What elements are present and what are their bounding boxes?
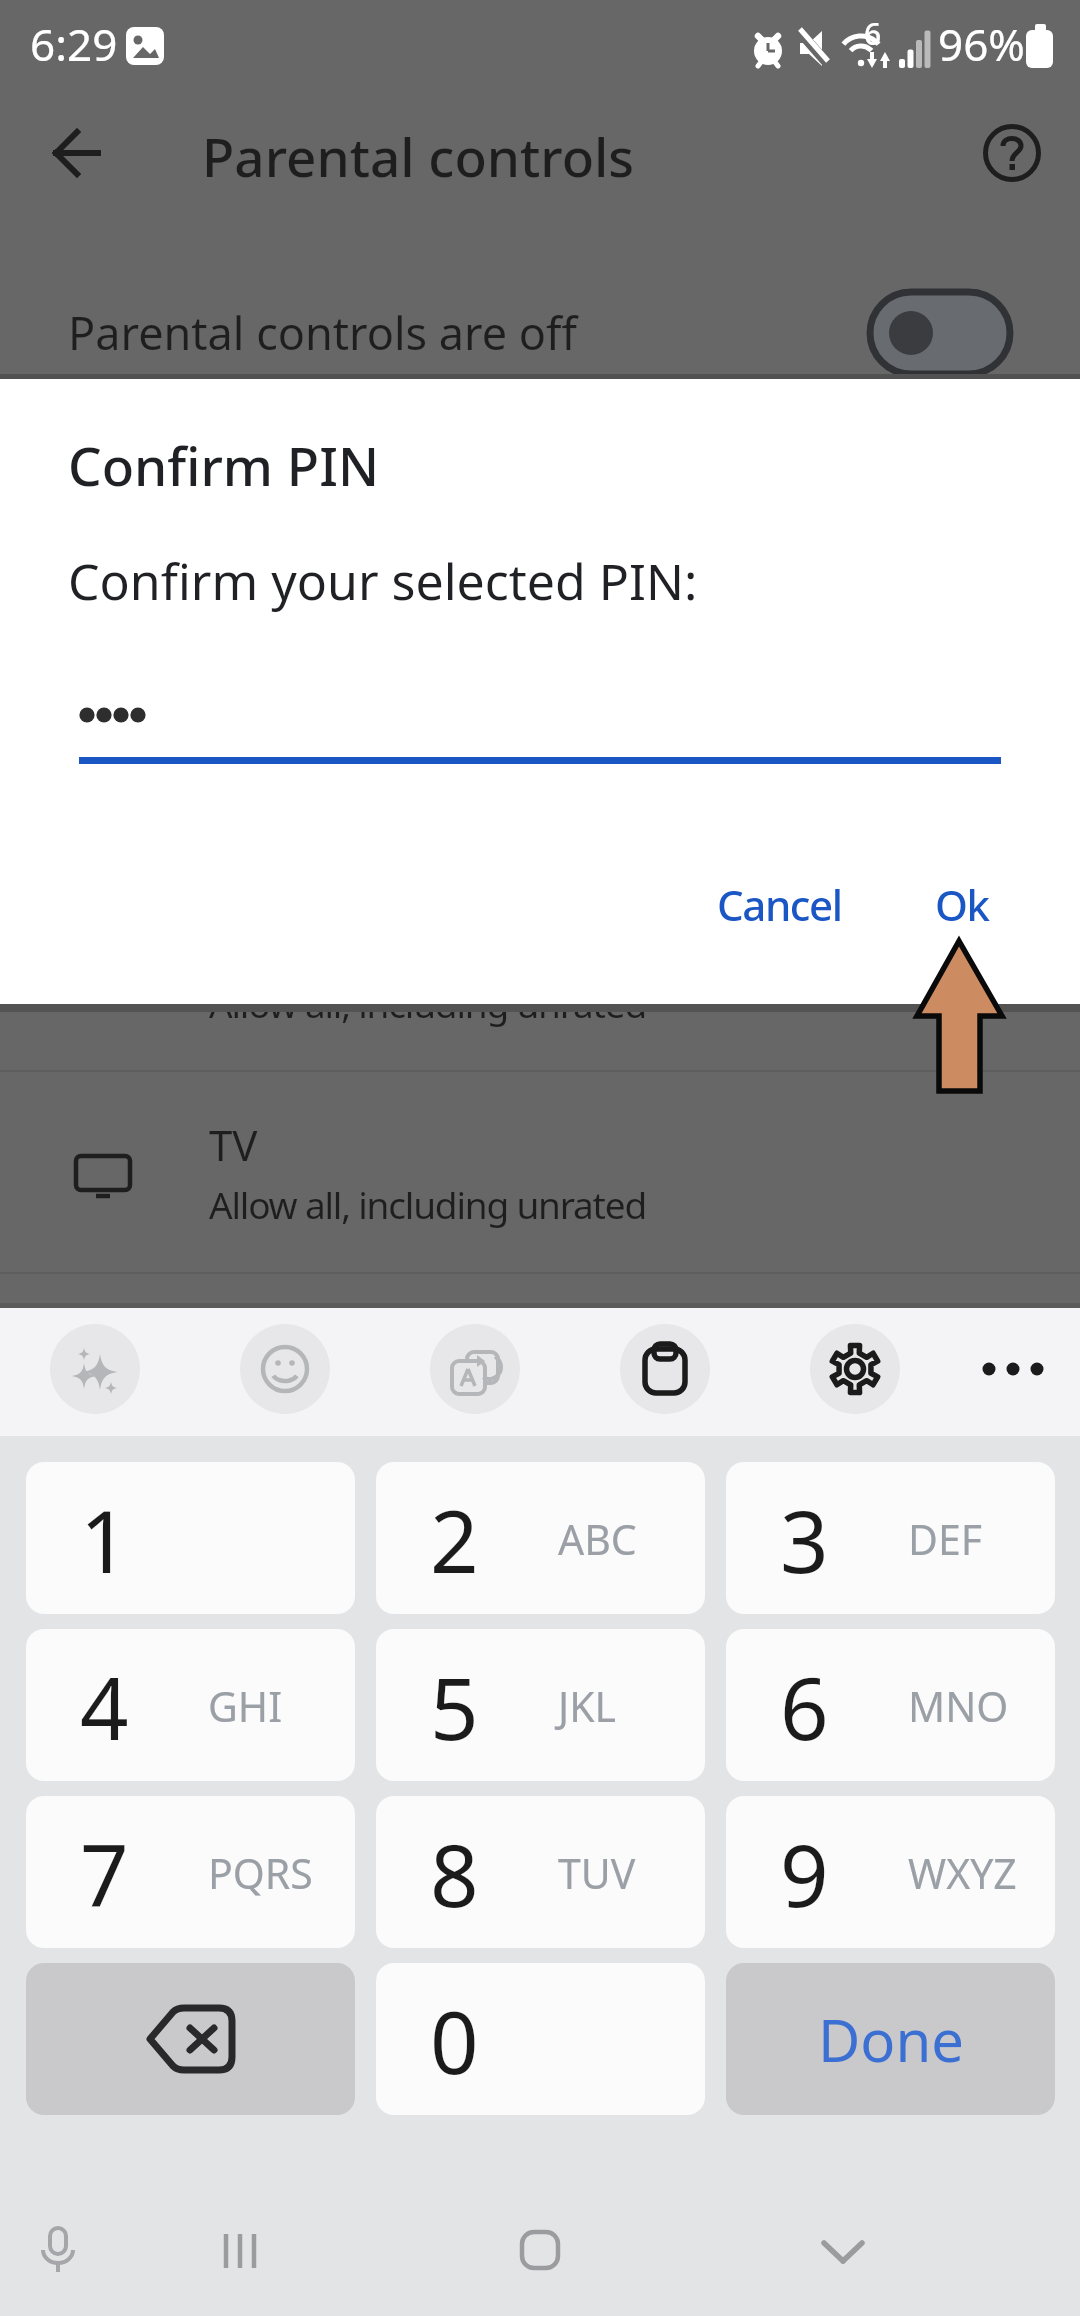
button[interactable]: 3: [726, 1462, 1055, 1614]
button[interactable]: Voice input: [18, 2210, 98, 2290]
button[interactable]: 0: [376, 1963, 705, 2115]
staticText: Parental controls: [202, 120, 635, 192]
staticText: WXYZ: [908, 1845, 1017, 1901]
staticText: DEF: [908, 1511, 983, 1567]
staticText: 1: [80, 1482, 129, 1598]
button[interactable]: Emoji: [240, 1324, 330, 1414]
staticText: 0: [430, 1983, 479, 2099]
button[interactable]: Ok: [907, 866, 1017, 942]
staticText: GHI: [208, 1678, 283, 1734]
button[interactable]: Parental controls toggle: [866, 288, 1014, 378]
button[interactable]: Settings: [810, 1324, 900, 1414]
staticText: ABC: [558, 1511, 637, 1567]
staticText: TUV: [558, 1845, 636, 1901]
staticText: 96%: [938, 14, 1025, 74]
staticText: Ok: [935, 876, 989, 933]
staticText: Parental controls are off: [68, 302, 577, 363]
button[interactable]: Suggestions: [50, 1324, 140, 1414]
button[interactable]: 2: [376, 1462, 705, 1614]
staticText: JKL: [558, 1678, 617, 1734]
staticText: Allow all, including unrated: [209, 978, 647, 1028]
button[interactable]: 6: [726, 1629, 1055, 1781]
staticText: 7: [80, 1816, 129, 1932]
staticText: 6: [864, 13, 882, 54]
button[interactable]: Back: [33, 109, 121, 197]
staticText: Confirm PIN: [68, 429, 380, 501]
staticText: 5: [430, 1649, 479, 1765]
staticText: PQRS: [208, 1845, 313, 1901]
button[interactable]: Cancel: [689, 866, 870, 942]
button[interactable]: Help: [968, 109, 1056, 197]
button[interactable]: More options: [968, 1324, 1058, 1414]
staticText: TV: [209, 1116, 258, 1173]
button[interactable]: 9: [726, 1796, 1055, 1948]
staticText: 8: [430, 1816, 479, 1932]
staticText: Cancel: [717, 876, 842, 933]
staticText: Allow all, including unrated: [209, 1179, 647, 1229]
staticText: 9: [780, 1816, 829, 1932]
button[interactable]: 1: [26, 1462, 355, 1614]
staticText: Done: [818, 2000, 964, 2079]
button[interactable]: [26, 1963, 355, 2115]
staticText: MNO: [908, 1678, 1009, 1734]
button[interactable]: 5: [376, 1629, 705, 1781]
staticText: 6: [780, 1649, 829, 1765]
staticText: Confirm your selected PIN:: [68, 547, 698, 615]
button[interactable]: Clipboard: [620, 1324, 710, 1414]
staticText: 3: [780, 1482, 829, 1598]
button[interactable]: Done: [726, 1963, 1055, 2115]
button[interactable]: Hide keyboard: [803, 2210, 883, 2290]
button[interactable]: Home: [500, 2210, 580, 2290]
staticText: 4: [80, 1649, 129, 1765]
button[interactable]: 7: [26, 1796, 355, 1948]
button[interactable]: Recent apps: [200, 2210, 280, 2290]
staticText: 6:29: [30, 14, 118, 74]
staticText: 2: [430, 1482, 479, 1598]
button[interactable]: 4: [26, 1629, 355, 1781]
button[interactable]: Translate: [430, 1324, 520, 1414]
button[interactable]: 8: [376, 1796, 705, 1948]
